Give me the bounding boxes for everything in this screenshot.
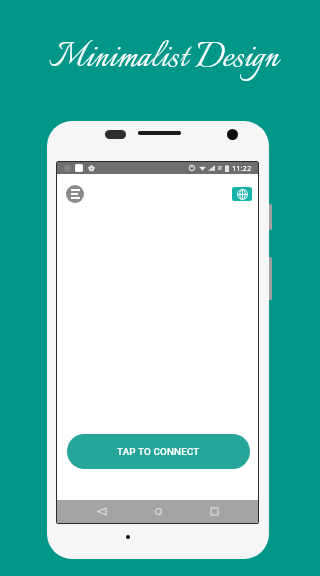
button[interactable]: Open navigation menu bbox=[66, 185, 84, 203]
button[interactable]: TAP TO CONNECT bbox=[67, 434, 250, 469]
staticText: 11:22 bbox=[232, 163, 252, 173]
button[interactable]: Back bbox=[91, 500, 113, 523]
staticText: TAP TO CONNECT bbox=[117, 446, 200, 457]
staticText: R bbox=[218, 164, 222, 172]
button[interactable]: Recent apps bbox=[203, 500, 225, 523]
button[interactable]: Change language bbox=[232, 187, 252, 201]
button[interactable]: Home bbox=[147, 500, 169, 523]
staticText: Minimalist Design bbox=[49, 32, 279, 86]
